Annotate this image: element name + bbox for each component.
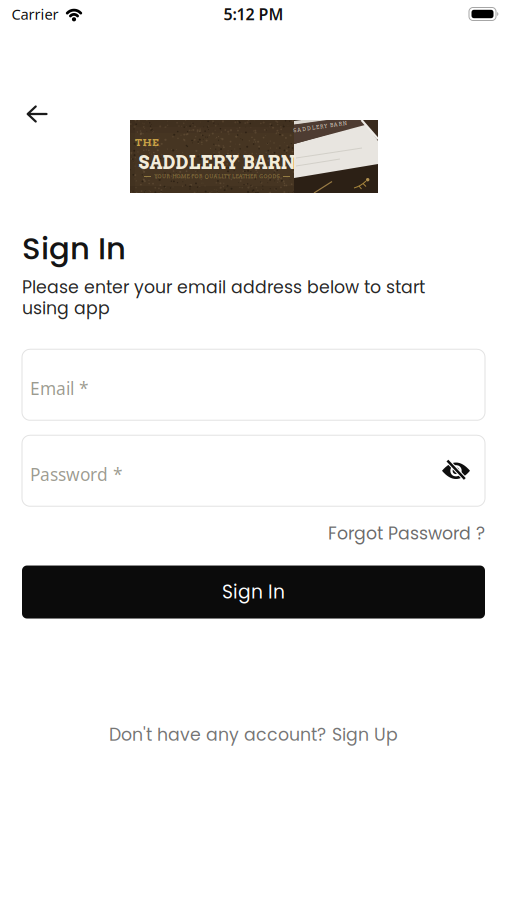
staticText: Forgot Password ?: [328, 521, 485, 546]
staticText: YOUR HOME FOR QUALITY LEATHER GOODS: [154, 173, 280, 179]
staticText: Sign In: [22, 227, 126, 270]
button[interactable]: Forgot Password ?: [328, 521, 485, 546]
textField[interactable]: Email *: [30, 377, 257, 400]
staticText: Carrier: [11, 4, 58, 24]
button[interactable]: Show password: [438, 454, 474, 488]
staticText: Email *: [30, 377, 89, 400]
button[interactable]: Back: [17, 97, 57, 131]
staticText: Sign Up: [332, 722, 398, 747]
button[interactable]: Sign In: [22, 565, 485, 618]
staticText: SADDLERY BARN: [138, 152, 295, 173]
button[interactable]: Sign Up: [332, 722, 398, 747]
staticText: using app: [22, 296, 110, 320]
staticText: SADDLERY BARN: [293, 124, 347, 130]
staticText: 5:12 PM: [223, 3, 283, 25]
secureTextField[interactable]: Password *: [30, 463, 234, 486]
staticText: Please enter your email address below to…: [22, 275, 425, 299]
staticText: THE: [135, 136, 159, 149]
staticText: Don't have any account?: [109, 722, 326, 747]
staticText: Password *: [30, 463, 123, 486]
staticText: Sign In: [222, 579, 285, 605]
